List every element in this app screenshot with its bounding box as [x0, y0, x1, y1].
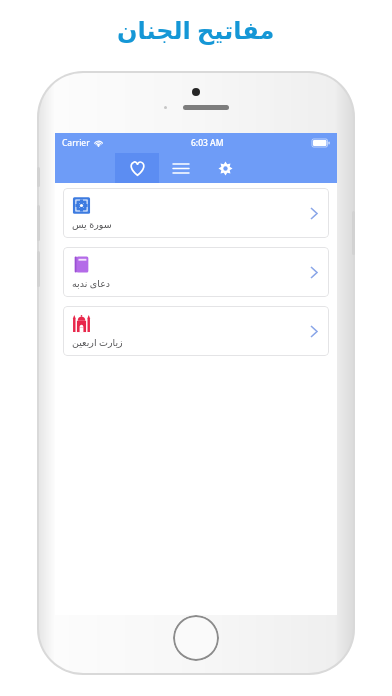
- staticText: سورة يس: [72, 218, 112, 231]
- staticText: زيارت اربعين: [72, 336, 123, 349]
- button[interactable]: Favorites: [115, 153, 159, 183]
- button[interactable]: Settings: [203, 153, 247, 183]
- staticText: مفاتيح الجنان: [117, 13, 275, 46]
- button[interactable]: سورة يس: [63, 188, 329, 238]
- button[interactable]: دعای ندبه: [63, 247, 329, 297]
- staticText: 6:03 AM: [191, 137, 224, 149]
- button[interactable]: Home button: [173, 615, 219, 661]
- staticText: دعای ندبه: [72, 277, 111, 290]
- button[interactable]: Menu: [159, 153, 203, 183]
- button[interactable]: زيارت اربعين: [63, 306, 329, 356]
- staticText: Carrier: [62, 137, 90, 149]
